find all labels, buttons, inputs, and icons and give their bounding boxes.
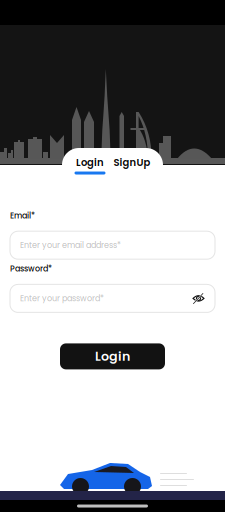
staticText: Login (95, 347, 130, 365)
button[interactable]: Login (74, 155, 105, 174)
staticText: Email* (10, 210, 35, 221)
staticText: Enter your email address* (20, 240, 121, 251)
staticText: Password* (10, 263, 52, 274)
staticText: Enter your password* (20, 293, 104, 304)
button[interactable]: SignUp (113, 155, 150, 174)
staticText: SignUp (113, 155, 150, 169)
button[interactable]: Login (60, 343, 165, 369)
staticText: Login (76, 155, 104, 169)
